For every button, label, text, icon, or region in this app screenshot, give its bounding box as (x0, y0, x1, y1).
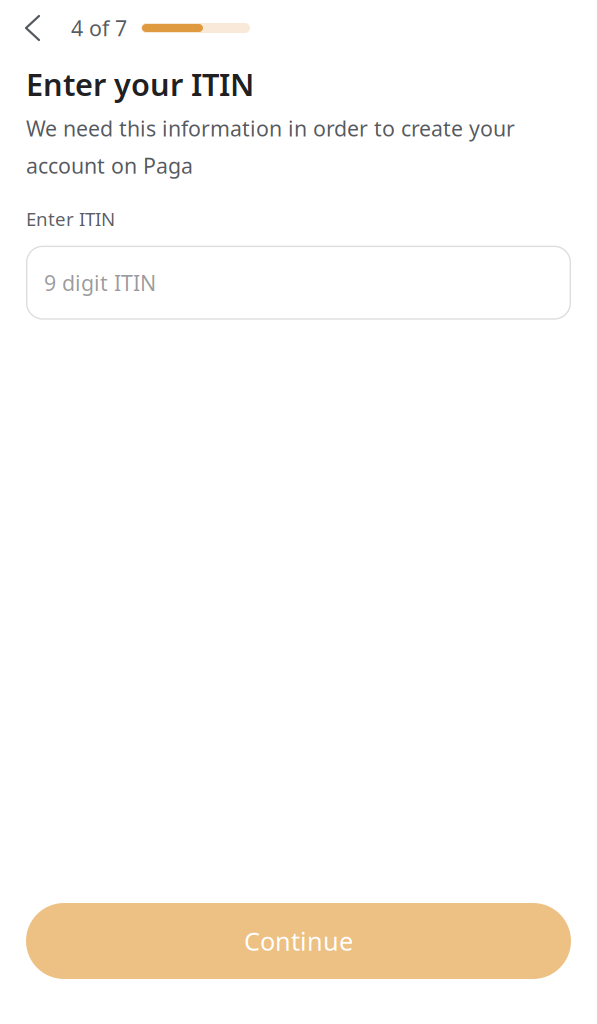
staticText: 9 digit ITIN (44, 268, 156, 297)
button[interactable]: Back (26, 13, 39, 43)
staticText: Enter your ITIN (26, 64, 254, 104)
staticText: Continue (244, 924, 353, 958)
staticText: Enter ITIN (26, 206, 115, 231)
button[interactable]: Continue (26, 903, 571, 979)
staticText: We need this information in order to cre… (26, 114, 515, 180)
staticText: 4 of 7 (71, 14, 127, 42)
button[interactable]: 9 digit ITIN (26, 246, 571, 320)
